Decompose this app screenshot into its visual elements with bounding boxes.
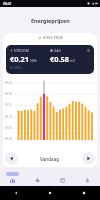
staticText: m3 [70, 58, 76, 63]
button[interactable]: HOGE PRIJS [38, 35, 63, 41]
button[interactable]: STROOM [6, 45, 94, 74]
button[interactable]: Prijzen [0, 168, 25, 186]
staticText: €0.20 [5, 92, 12, 96]
staticText: €0.21 [10, 54, 29, 64]
button[interactable]: Verbruik [25, 168, 50, 186]
staticText: 08:41 [3, 1, 12, 6]
staticText: €0.00 [5, 137, 12, 141]
staticText: Vandaag [40, 156, 60, 162]
other: Info [87, 49, 90, 52]
button[interactable]: Vorige dag [5, 152, 18, 165]
staticText: kWh [30, 58, 38, 63]
button[interactable]: Volgende dag [82, 152, 95, 165]
staticText: Energieprijzen [31, 17, 70, 24]
staticText: HUIDIG [10, 66, 22, 70]
staticText: GAS [54, 48, 61, 52]
staticText: €0.05 [5, 126, 12, 130]
staticText: HOGE PRIJS [43, 36, 63, 40]
staticText: STROOM [14, 48, 30, 52]
button[interactable]: Contract [50, 168, 75, 186]
staticText: €0.25 [5, 81, 12, 85]
staticText: €0.15 [5, 103, 12, 107]
button[interactable]: Account [75, 168, 100, 186]
staticText: €0.10 [5, 115, 12, 119]
staticText: €0.58 [50, 54, 69, 64]
